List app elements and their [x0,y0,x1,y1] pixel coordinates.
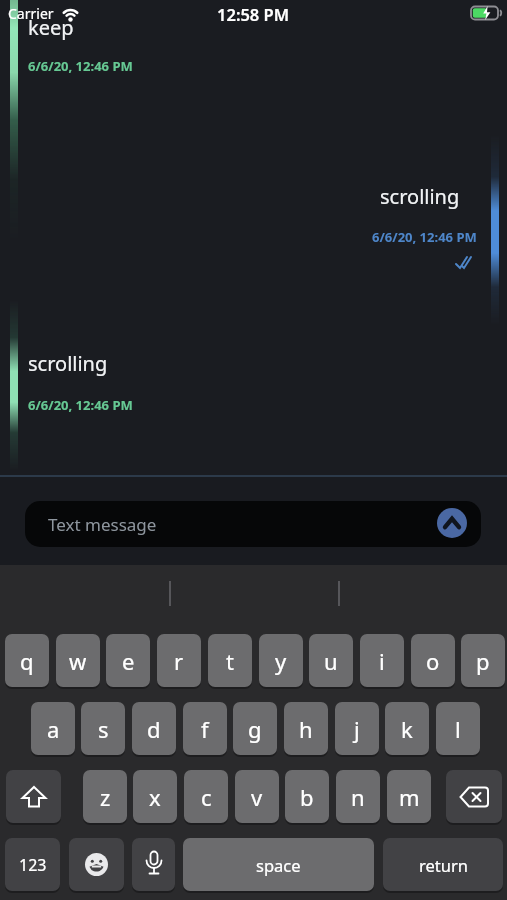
button[interactable]: y [259,634,303,687]
staticText: scrolling [380,183,460,210]
staticText: q [20,646,34,676]
button[interactable]: b [285,770,329,823]
button[interactable]: Text message [25,501,481,547]
button[interactable]: g [233,702,277,755]
staticText: f [201,714,209,744]
button[interactable]: l [436,702,480,755]
button[interactable]: w [56,634,100,687]
staticText: m [399,782,420,812]
button[interactable]: o [411,634,455,687]
staticText: d [147,714,161,744]
staticText: r [174,646,184,676]
button[interactable]: q [5,634,49,687]
staticText: 12:58 PM [217,3,290,25]
staticText: l [455,714,461,744]
staticText: i [379,646,385,676]
button[interactable]: e [106,634,150,687]
staticText: p [476,646,490,676]
button[interactable] [6,770,61,823]
button[interactable] [132,838,175,891]
staticText: 6/6/20, 12:46 PM [28,396,133,414]
button[interactable]: n [336,770,380,823]
staticText: u [324,646,338,676]
staticText: x [149,782,161,812]
button[interactable] [69,838,124,891]
staticText: scrolling [28,350,108,377]
staticText: j [354,714,360,744]
staticText: a [47,714,60,744]
button[interactable]: s [81,702,125,755]
button[interactable]: space [183,838,374,891]
button[interactable]: return [383,838,503,891]
button[interactable]: m [387,770,431,823]
button[interactable] [437,508,467,538]
button[interactable] [446,770,502,823]
button[interactable]: c [184,770,228,823]
button[interactable]: d [132,702,176,755]
staticText: k [401,714,413,744]
staticText: s [98,714,109,744]
button[interactable]: r [157,634,201,687]
staticText: w [69,646,87,676]
button[interactable]: a [31,702,75,755]
staticText: 6/6/20, 12:46 PM [372,228,477,246]
staticText: o [426,646,440,676]
button[interactable]: k [385,702,429,755]
staticText: g [248,714,262,744]
button[interactable]: j [335,702,379,755]
staticText: keep [28,14,74,41]
button[interactable]: v [235,770,279,823]
button[interactable]: f [183,702,227,755]
button[interactable]: u [309,634,353,687]
staticText: Carrier [8,4,54,23]
staticText: h [299,714,313,744]
staticText: z [100,782,111,812]
staticText: 6/6/20, 12:46 PM [28,57,133,75]
staticText: b [300,782,314,812]
button[interactable]: t [208,634,252,687]
staticText: c [201,782,212,812]
staticText: e [122,646,135,676]
button[interactable]: 123 [5,838,60,891]
staticText: Text message [48,513,157,536]
button[interactable]: p [461,634,505,687]
staticText: y [275,646,287,676]
staticText: space [256,854,301,876]
staticText: v [251,782,263,812]
button[interactable]: x [133,770,177,823]
staticText: t [226,646,234,676]
button[interactable]: z [83,770,127,823]
staticText: n [351,782,365,812]
staticText: return [419,854,468,876]
button[interactable]: h [284,702,328,755]
staticText: 123 [19,854,47,876]
button[interactable]: i [360,634,404,687]
